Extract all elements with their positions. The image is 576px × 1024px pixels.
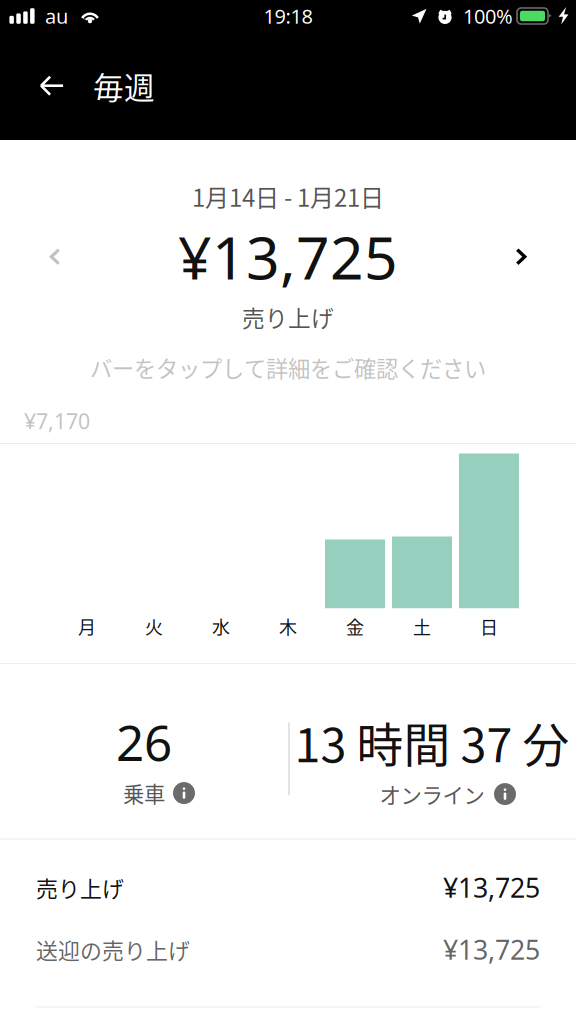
staticText: 26: [116, 709, 172, 775]
button[interactable]: 金: [325, 451, 385, 640]
staticText: au: [45, 3, 68, 29]
staticText: 水: [212, 613, 230, 640]
staticText: 日: [480, 613, 498, 640]
staticText: オンライン: [379, 779, 484, 809]
button[interactable]: 日: [459, 451, 519, 640]
staticText: 13 時間 37 分: [294, 708, 569, 776]
button[interactable]: 詳細: [173, 782, 195, 804]
button[interactable]: 水: [191, 451, 251, 640]
staticText: 100%: [463, 3, 513, 29]
staticText: ¥13,725: [178, 218, 398, 296]
staticText: ¥7,170: [24, 407, 90, 435]
staticText: ¥13,725: [443, 932, 540, 967]
staticText: 木: [279, 613, 297, 640]
staticText: 乗車: [123, 778, 165, 808]
staticText: 売り上げ: [36, 872, 124, 903]
button[interactable]: 前の週: [24, 229, 86, 285]
button[interactable]: 土: [392, 451, 452, 640]
staticText: 土: [413, 613, 431, 640]
staticText: バーをタップして詳細をご確認ください: [90, 351, 486, 384]
button[interactable]: 火: [124, 451, 184, 640]
button[interactable]: 送迎の売り上げ: [0, 918, 576, 980]
button[interactable]: 売り上げ: [0, 856, 576, 918]
staticText: 毎週: [93, 64, 155, 108]
staticText: 金: [346, 613, 364, 640]
button[interactable]: 月: [57, 451, 117, 640]
button[interactable]: 木: [258, 451, 318, 640]
button[interactable]: 戻る: [23, 55, 81, 117]
staticText: 1月14日 - 1月21日: [192, 179, 384, 214]
staticText: 月: [78, 613, 96, 640]
button[interactable]: 次の週: [490, 229, 552, 285]
button[interactable]: 詳細: [494, 783, 516, 805]
staticText: 送迎の売り上げ: [36, 934, 190, 965]
staticText: 19:18: [263, 3, 312, 29]
staticText: 売り上げ: [242, 301, 334, 333]
staticText: 火: [145, 613, 163, 640]
staticText: ¥13,725: [443, 870, 540, 905]
